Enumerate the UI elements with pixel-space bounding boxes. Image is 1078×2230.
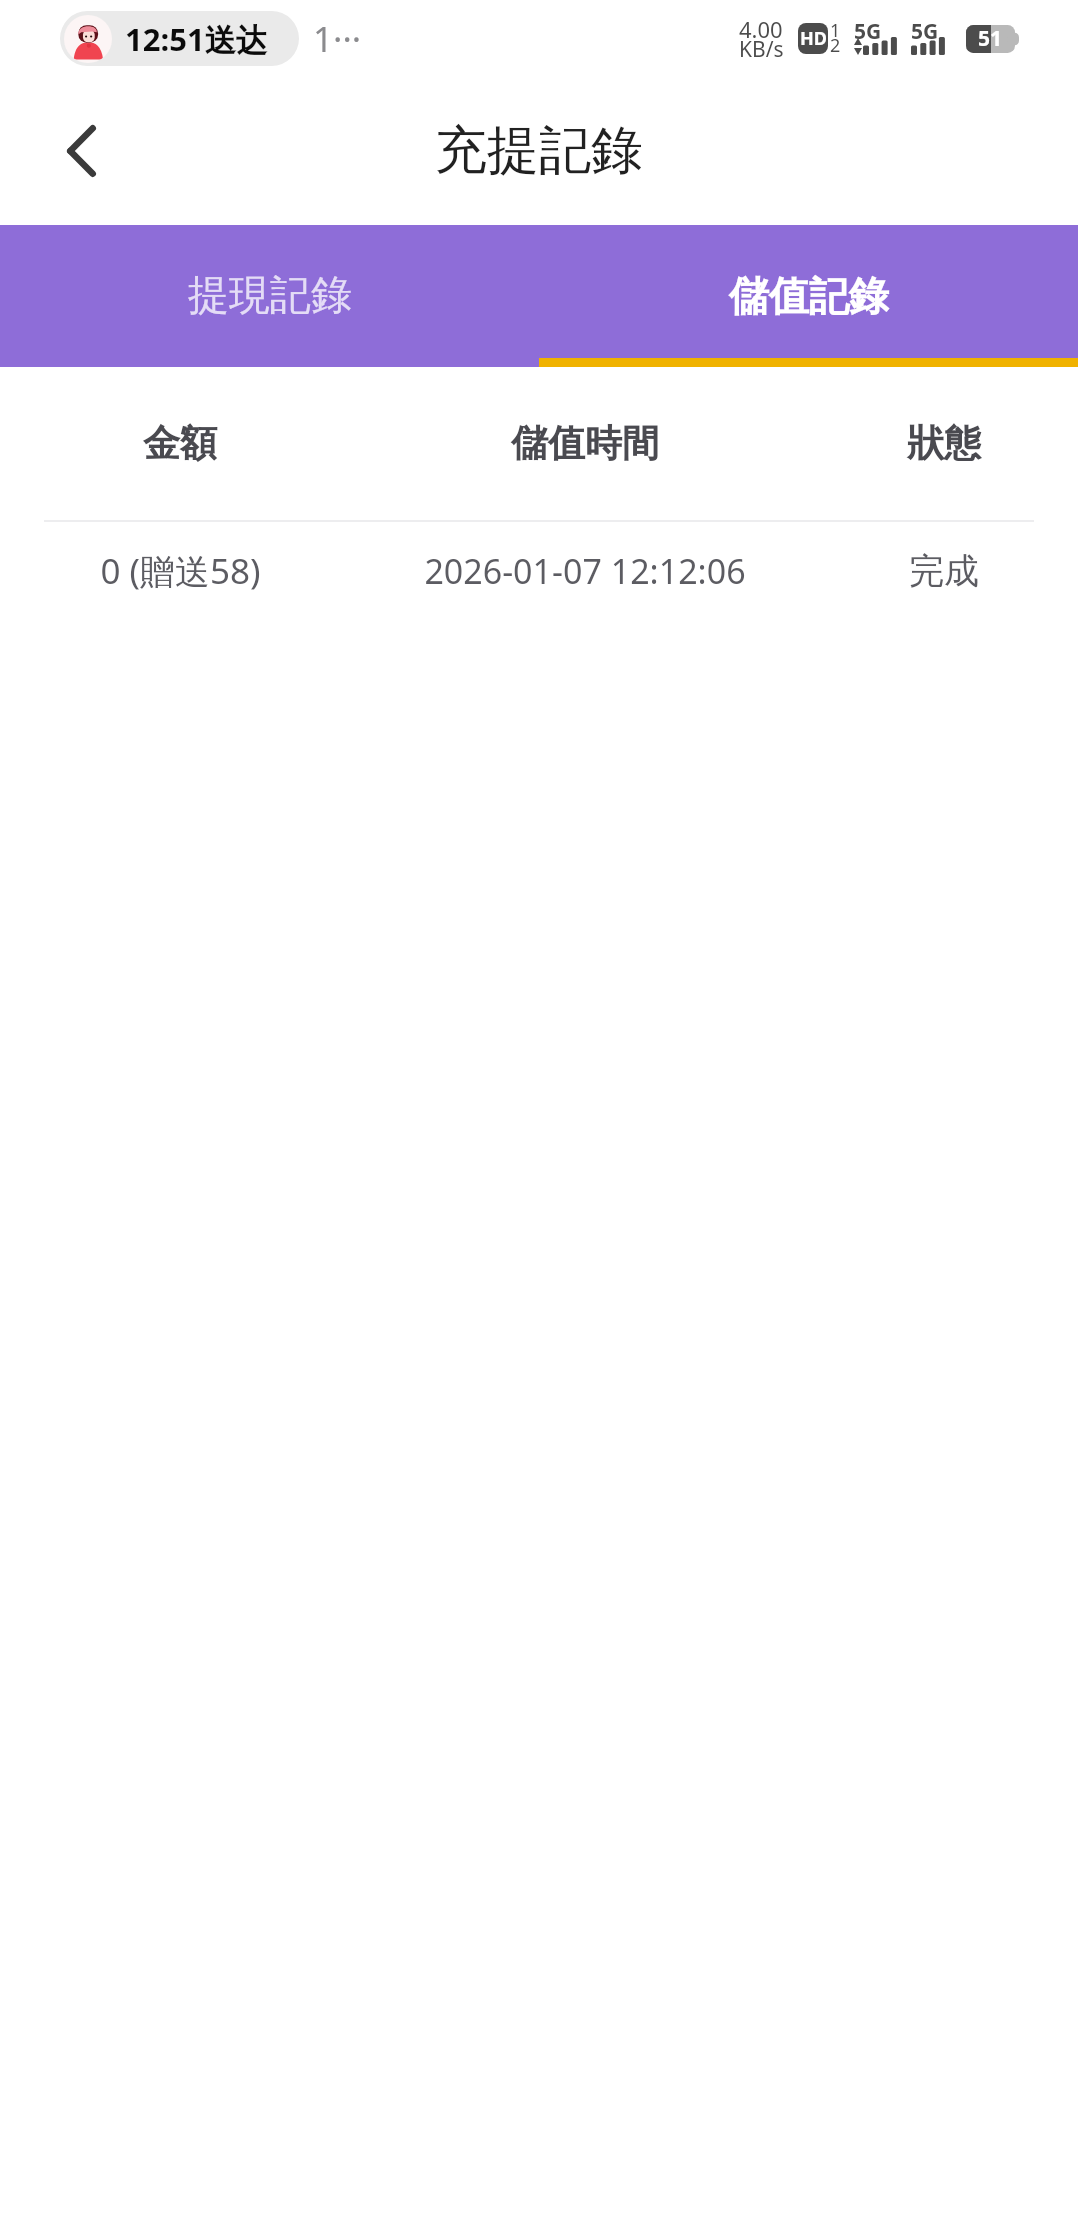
staticText: 5G (911, 17, 939, 46)
staticText: 0 (贈送58) (100, 547, 261, 595)
button[interactable]: 0 (贈送58) (0, 522, 1078, 620)
staticText: 2026-01-07 12:12:06 (424, 548, 746, 594)
staticText: KB/s (739, 35, 784, 64)
staticText: 儲值時間 (511, 420, 659, 467)
staticText: 充提記錄 (435, 118, 643, 184)
staticText: 儲值記錄 (729, 271, 889, 321)
staticText: 2 (830, 33, 841, 58)
staticText: 狀態 (907, 420, 981, 467)
button[interactable]: 儲值記錄 (539, 225, 1078, 367)
button[interactable]: Back (0, 76, 145, 225)
staticText: 12:51送达 (125, 18, 267, 60)
staticText: HD (800, 26, 827, 51)
staticText: 51 (978, 24, 1003, 53)
staticText: 1··· (313, 15, 362, 63)
staticText: 1 (830, 18, 841, 43)
staticText: 提現記錄 (188, 270, 352, 322)
staticText: 金額 (143, 420, 217, 467)
staticText: 4.00 (739, 14, 783, 44)
staticText: 5G (854, 17, 882, 46)
staticText: 完成 (909, 549, 979, 593)
button[interactable]: 提現記錄 (0, 225, 539, 367)
